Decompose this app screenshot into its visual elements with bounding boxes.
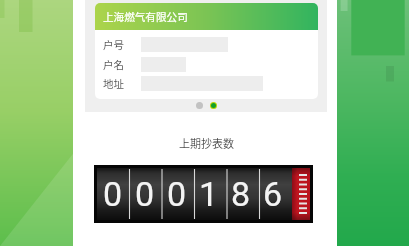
- staticText: 0: [167, 174, 187, 214]
- staticText: 户名: [103, 57, 124, 72]
- staticText: 1: [199, 174, 219, 214]
- staticText: 上海燃气有限公司: [103, 9, 188, 24]
- button[interactable]: 上海燃气有限公司: [95, 3, 318, 99]
- staticText: 上期抄表数: [179, 135, 234, 151]
- staticText: 6: [263, 174, 283, 214]
- staticText: 0: [103, 174, 123, 214]
- staticText: 8: [231, 174, 251, 214]
- staticText: 0: [135, 174, 155, 214]
- staticText: 户号: [103, 37, 124, 52]
- staticText: 地址: [103, 76, 124, 91]
